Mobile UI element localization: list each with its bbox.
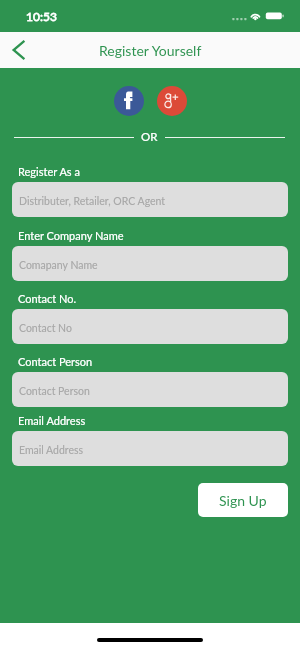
staticText: Sign Up: [219, 492, 267, 509]
button[interactable]: Comapany Name: [12, 246, 288, 281]
staticText: Comapany Name: [19, 259, 98, 272]
staticText: Contact No.: [18, 292, 77, 305]
staticText: Contact Person: [18, 355, 93, 368]
staticText: 10:53: [26, 9, 57, 23]
button[interactable]: Contact No: [12, 309, 288, 344]
staticText: OR: [141, 130, 158, 144]
staticText: Distributer, Retailer, ORC Agent: [19, 195, 166, 208]
staticText: Register As a: [18, 165, 80, 178]
button[interactable]: Sign up with Facebook: [114, 86, 144, 116]
staticText: Register Yourself: [99, 42, 202, 59]
button[interactable]: Back: [0, 32, 38, 68]
button[interactable]: Sign Up: [198, 483, 288, 517]
button[interactable]: Sign up with Google Plus: [157, 86, 187, 116]
button[interactable]: Distributer, Retailer, ORC Agent: [12, 182, 288, 217]
staticText: Email Address: [19, 444, 84, 457]
staticText: Enter Company Name: [18, 229, 124, 242]
staticText: Email Address: [18, 414, 86, 427]
staticText: Contact No: [19, 322, 72, 335]
button[interactable]: Email Address: [12, 431, 288, 466]
staticText: Contact Person: [19, 385, 90, 398]
button[interactable]: Contact Person: [12, 372, 288, 407]
